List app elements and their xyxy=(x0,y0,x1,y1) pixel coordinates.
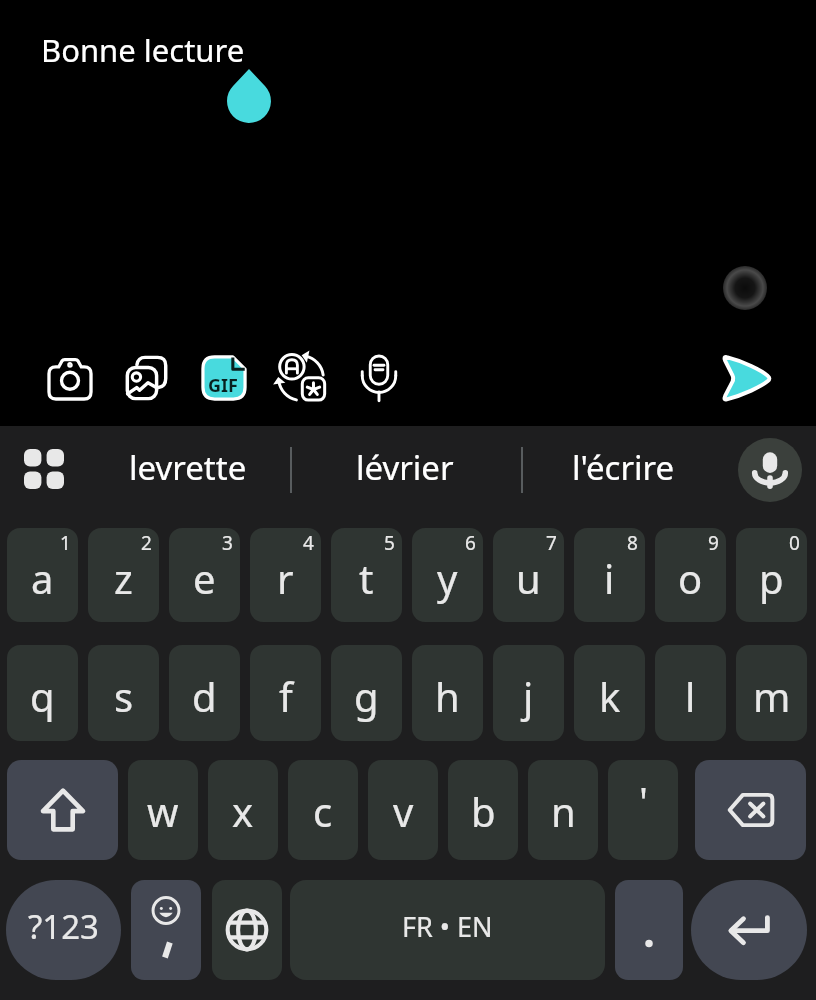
staticText: i xyxy=(604,551,615,605)
staticText: 4 xyxy=(303,530,314,556)
button[interactable]: g xyxy=(331,645,402,741)
button[interactable]: Send xyxy=(713,345,779,411)
button[interactable]: Backspace xyxy=(695,760,806,860)
staticText: t xyxy=(359,551,374,605)
staticText: r xyxy=(277,551,294,605)
button[interactable]: z xyxy=(88,528,159,622)
staticText: f xyxy=(279,669,293,723)
staticText: z xyxy=(114,551,133,605)
button[interactable]: GIF xyxy=(191,345,257,411)
button[interactable]: o xyxy=(655,528,726,622)
staticText: 7 xyxy=(546,530,557,556)
staticText: m xyxy=(753,669,791,723)
staticText: c xyxy=(313,784,333,838)
staticText: w xyxy=(147,784,179,838)
button[interactable]: m xyxy=(736,645,807,741)
button[interactable]: t xyxy=(331,528,402,622)
button[interactable]: FR • EN xyxy=(290,880,605,980)
staticText: b xyxy=(471,784,496,838)
staticText: 6 xyxy=(465,530,476,556)
staticText: s xyxy=(114,669,134,723)
staticText: 5 xyxy=(384,530,395,556)
button[interactable]: a xyxy=(7,528,78,622)
button[interactable]: b xyxy=(448,760,518,860)
button[interactable]: lévrier xyxy=(305,436,505,502)
button[interactable]: Period xyxy=(615,880,683,980)
staticText: levrette xyxy=(129,445,247,490)
button[interactable]: h xyxy=(412,645,483,741)
staticText: e xyxy=(193,551,216,605)
staticText: l'écrire xyxy=(572,445,675,490)
button[interactable]: p xyxy=(736,528,807,622)
button[interactable]: Emoji xyxy=(131,880,201,980)
button[interactable]: More options xyxy=(12,437,76,501)
staticText: lévrier xyxy=(356,445,454,490)
button[interactable]: ' xyxy=(608,760,678,860)
button[interactable]: Gallery xyxy=(114,345,180,411)
staticText: o xyxy=(678,551,703,605)
button[interactable]: w xyxy=(128,760,198,860)
button[interactable]: d xyxy=(169,645,240,741)
staticText: a xyxy=(31,551,54,605)
staticText: q xyxy=(30,669,55,723)
staticText: y xyxy=(437,551,458,605)
button[interactable]: Voice input xyxy=(738,438,802,502)
button[interactable]: l'écrire xyxy=(523,436,723,502)
staticText: k xyxy=(599,669,621,723)
button[interactable]: j xyxy=(493,645,564,741)
button[interactable]: i xyxy=(574,528,645,622)
button[interactable]: e xyxy=(169,528,240,622)
button[interactable]: y xyxy=(412,528,483,622)
staticText: h xyxy=(435,669,460,723)
staticText: u xyxy=(516,551,541,605)
button[interactable]: u xyxy=(493,528,564,622)
staticText: FR • EN xyxy=(402,908,493,945)
staticText: GIF xyxy=(208,373,238,398)
staticText: p xyxy=(759,551,784,605)
staticText: ' xyxy=(639,774,648,828)
button[interactable]: Translate xyxy=(268,345,334,411)
button[interactable]: c xyxy=(288,760,358,860)
staticText: 1 xyxy=(60,530,71,556)
staticText: 9 xyxy=(708,530,719,556)
staticText: Bonne lecture xyxy=(41,29,245,71)
staticText: 3 xyxy=(222,530,233,556)
staticText: n xyxy=(551,784,576,838)
button[interactable]: k xyxy=(574,645,645,741)
button[interactable]: s xyxy=(88,645,159,741)
staticText: x xyxy=(232,784,254,838)
button[interactable]: ?123 xyxy=(6,880,121,980)
staticText: g xyxy=(354,669,379,723)
staticText: d xyxy=(192,669,217,723)
staticText: j xyxy=(523,669,534,723)
button[interactable]: levrette xyxy=(88,436,288,502)
button[interactable]: q xyxy=(7,645,78,741)
button[interactable]: f xyxy=(250,645,321,741)
button[interactable]: Change language xyxy=(212,880,282,980)
button[interactable]: Camera xyxy=(37,345,103,411)
staticText: l xyxy=(685,669,696,723)
button[interactable]: r xyxy=(250,528,321,622)
staticText: 0 xyxy=(789,530,800,556)
button[interactable]: n xyxy=(528,760,598,860)
staticText: v xyxy=(393,784,414,838)
button[interactable]: l xyxy=(655,645,726,741)
staticText: 8 xyxy=(627,530,638,556)
button[interactable]: Voice message xyxy=(346,345,412,411)
staticText: 2 xyxy=(141,530,152,556)
button[interactable]: x xyxy=(208,760,278,860)
staticText: ?123 xyxy=(28,904,99,949)
button[interactable]: Shift xyxy=(7,760,118,860)
button[interactable]: Enter xyxy=(691,880,807,980)
button[interactable]: v xyxy=(368,760,438,860)
